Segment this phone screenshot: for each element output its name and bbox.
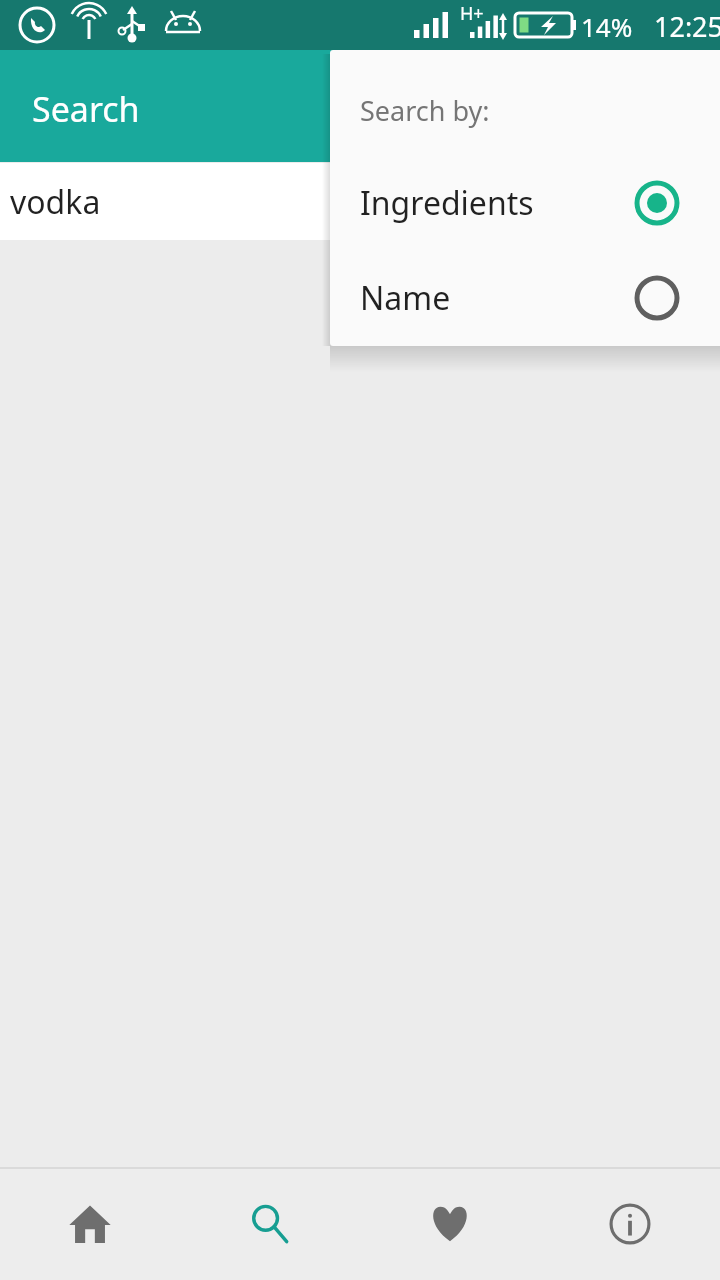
staticText: vodka xyxy=(10,180,101,224)
button[interactable]: Search xyxy=(180,1167,360,1280)
staticText: 14% xyxy=(581,9,633,44)
button[interactable]: Favorites xyxy=(360,1167,540,1280)
staticText: Ingredients xyxy=(360,181,534,225)
button[interactable]: Name xyxy=(330,248,720,346)
button[interactable]: Ingredients xyxy=(330,153,720,253)
button[interactable]: vodka xyxy=(0,163,720,240)
button[interactable]: Home xyxy=(0,1167,180,1280)
staticText: Name xyxy=(360,276,451,320)
staticText: 12:25 xyxy=(654,8,720,45)
staticText: Search by: xyxy=(360,92,490,129)
staticText: Search xyxy=(32,86,140,132)
button[interactable]: Info xyxy=(540,1167,720,1280)
staticText: H+ xyxy=(460,1,484,26)
